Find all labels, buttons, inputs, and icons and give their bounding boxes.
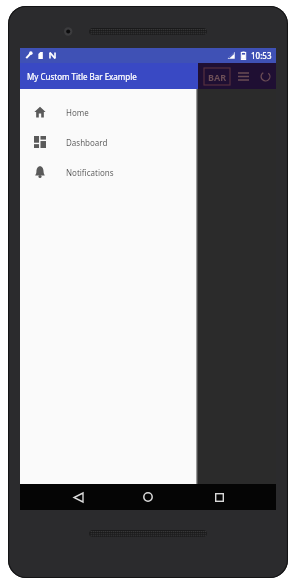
staticText: Dashboard [66, 137, 108, 148]
button[interactable]: Notifications [20, 157, 196, 187]
staticText: 10:53 [251, 50, 272, 61]
button[interactable]: Home [20, 97, 196, 127]
staticText: My Custom Title Bar Example [27, 71, 137, 82]
staticText: Notifications [66, 167, 114, 178]
button[interactable]: Menu [234, 67, 252, 85]
button[interactable]: Dashboard [20, 127, 196, 157]
button[interactable]: Home [135, 484, 161, 510]
staticText: BAR [208, 71, 227, 83]
button[interactable]: Refresh [256, 67, 274, 85]
button[interactable]: Back [65, 484, 91, 510]
staticText: Home [66, 107, 89, 118]
button[interactable]: BAR [204, 68, 230, 85]
button[interactable]: Recent apps [206, 484, 232, 510]
